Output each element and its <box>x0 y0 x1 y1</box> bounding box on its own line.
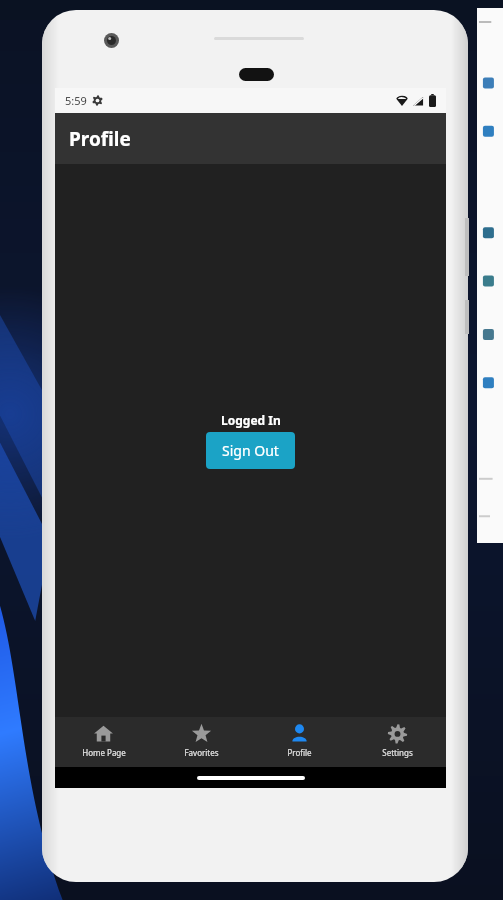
staticText: Profile <box>287 747 312 758</box>
button[interactable]: Profile <box>250 717 348 767</box>
button[interactable]: Settings <box>348 717 446 767</box>
staticText: Favorites <box>184 747 219 758</box>
staticText: Settings <box>382 747 413 758</box>
button[interactable]: Favorites <box>152 717 250 767</box>
button[interactable]: Sign Out <box>206 432 295 469</box>
staticText: Profile <box>69 126 131 152</box>
staticText: 5:59 <box>65 93 87 108</box>
staticText: Sign Out <box>222 441 279 460</box>
button[interactable]: Home Page <box>55 717 152 767</box>
staticText: Logged In <box>221 412 281 428</box>
staticText: Home Page <box>82 747 126 758</box>
